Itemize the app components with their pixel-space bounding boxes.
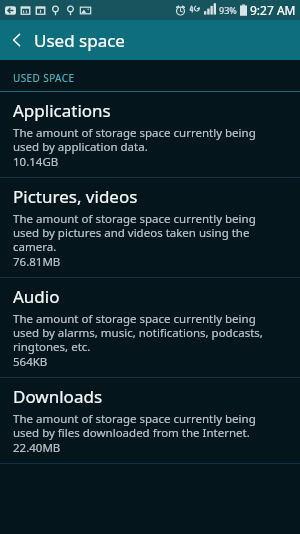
staticText: Applications <box>13 99 111 122</box>
button[interactable]: Downloads <box>0 378 300 463</box>
staticText: The amount of storage space currently be… <box>13 311 263 354</box>
staticText: 564KB <box>13 354 48 370</box>
button[interactable]: Pictures, videos <box>0 178 300 277</box>
button[interactable]: Back <box>0 23 34 57</box>
staticText: 93% <box>219 4 237 16</box>
staticText: 9:27 AM <box>250 2 296 18</box>
staticText: Used space <box>34 29 125 52</box>
staticText: USED SPACE <box>13 71 75 85</box>
staticText: Pictures, videos <box>13 185 138 208</box>
staticText: 10.14GB <box>13 154 59 170</box>
staticText: Downloads <box>13 385 103 408</box>
staticText: The amount of storage space currently be… <box>13 125 256 154</box>
staticText: 76.81MB <box>13 254 61 270</box>
staticText: 22.40MB <box>13 440 61 456</box>
button[interactable]: Applications <box>0 92 300 177</box>
staticText: The amount of storage space currently be… <box>13 411 256 440</box>
button[interactable]: Audio <box>0 278 300 377</box>
staticText: Audio <box>13 285 60 308</box>
staticText: The amount of storage space currently be… <box>13 211 256 254</box>
